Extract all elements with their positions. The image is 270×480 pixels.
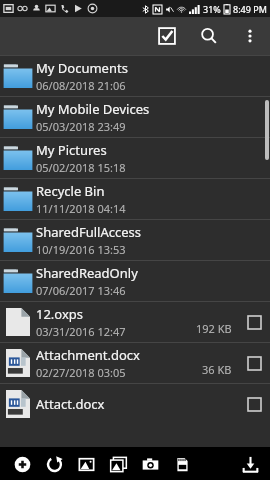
button[interactable]: Images xyxy=(102,449,134,479)
button[interactable]: Select 12.oxps xyxy=(242,310,266,334)
button[interactable]: My Pictures xyxy=(0,138,270,178)
staticText: Recycle Bin xyxy=(36,182,105,200)
button[interactable]: My Documents xyxy=(0,56,270,96)
button[interactable]: Download xyxy=(236,450,264,478)
button[interactable]: Attachment.docx xyxy=(0,343,270,383)
button[interactable]: Refresh xyxy=(38,449,70,479)
button[interactable]: Select all xyxy=(146,17,188,55)
staticText: SharedReadOnly xyxy=(36,264,138,282)
button[interactable]: Search xyxy=(188,17,230,55)
staticText: Attact.docx xyxy=(36,395,105,413)
button[interactable]: SD card xyxy=(166,449,198,479)
staticText: 05/02/2018 15:18 xyxy=(36,160,126,175)
staticText: SharedFullAccess xyxy=(36,223,141,241)
staticText: 07/06/2017 13:46 xyxy=(36,283,126,298)
button[interactable]: Gallery xyxy=(70,449,102,479)
button[interactable]: Recycle Bin xyxy=(0,179,270,219)
staticText: 12.oxps xyxy=(36,305,84,323)
staticText: 31% xyxy=(203,3,221,15)
button[interactable]: Select Attact.docx xyxy=(242,392,266,416)
staticText: 192 KB xyxy=(196,321,232,336)
button[interactable]: My Mobile Devices xyxy=(0,97,270,137)
staticText: 06/08/2018 21:06 xyxy=(36,78,126,93)
staticText: 8:49 PM xyxy=(233,3,267,15)
button[interactable]: SharedFullAccess xyxy=(0,220,270,260)
button[interactable]: Attact.docx xyxy=(0,384,270,424)
staticText: 05/03/2018 23:49 xyxy=(36,119,126,134)
staticText: My Pictures xyxy=(36,141,107,159)
button[interactable]: Select Attachment.docx xyxy=(242,351,266,375)
button[interactable]: More options xyxy=(230,17,270,55)
button[interactable]: Add xyxy=(6,449,38,479)
staticText: My Mobile Devices xyxy=(36,100,150,118)
button[interactable]: 12.oxps xyxy=(0,302,270,342)
staticText: 10/19/2016 13:53 xyxy=(36,242,126,257)
button[interactable]: Camera xyxy=(134,449,166,479)
staticText: Attachment.docx xyxy=(36,346,140,364)
staticText: 02/27/2018 03:05 xyxy=(36,365,126,380)
staticText: 11/11/2018 04:14 xyxy=(36,201,126,216)
staticText: 03/31/2016 12:47 xyxy=(36,324,126,339)
button[interactable]: SharedReadOnly xyxy=(0,261,270,301)
staticText: My Documents xyxy=(36,59,128,77)
staticText: 36 KB xyxy=(202,362,232,377)
